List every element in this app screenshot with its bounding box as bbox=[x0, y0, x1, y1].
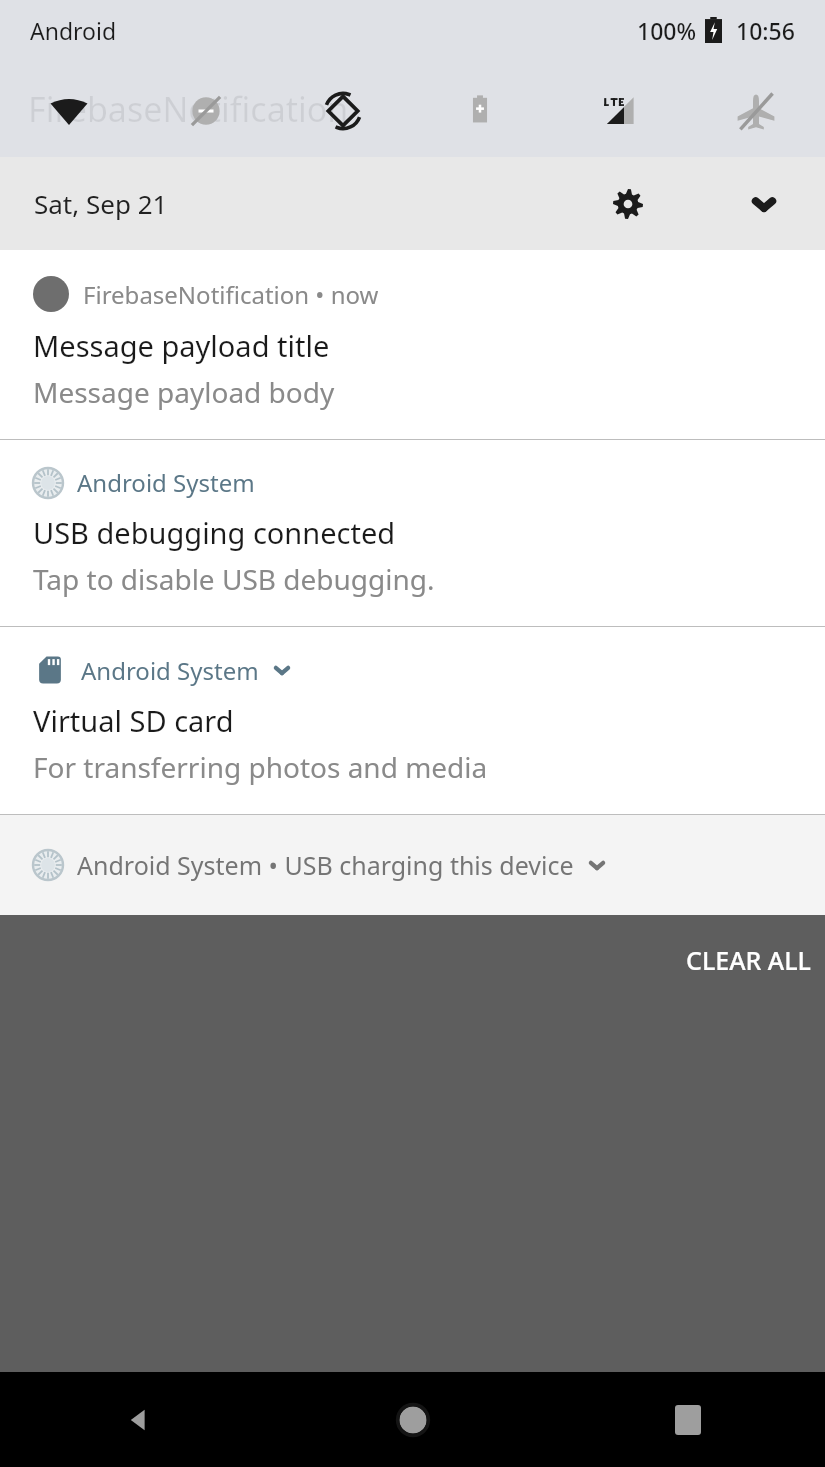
staticText: 10:56 bbox=[736, 15, 795, 46]
button[interactable]: Quick setting bbox=[411, 89, 549, 133]
button[interactable]: Recents bbox=[550, 1372, 825, 1467]
button[interactable]: CLEAR ALL bbox=[672, 933, 825, 987]
staticText: Android System • USB charging this devic… bbox=[77, 848, 574, 882]
staticText: Message payload title bbox=[33, 326, 330, 365]
staticText: Sat, Sep 21 bbox=[34, 186, 168, 221]
staticText: 100% bbox=[637, 15, 697, 46]
staticText: Android bbox=[30, 15, 117, 46]
staticText: USB debugging connected bbox=[33, 513, 396, 552]
button[interactable]: Quick setting bbox=[274, 89, 411, 133]
staticText: For transferring photos and media bbox=[33, 748, 488, 786]
staticText: Virtual SD card bbox=[33, 701, 234, 740]
button[interactable]: Quick setting bbox=[549, 88, 687, 134]
button[interactable]: Android System bbox=[0, 627, 825, 814]
button[interactable]: Quick setting bbox=[687, 88, 825, 134]
staticText: FirebaseNotification bbox=[28, 86, 349, 132]
button[interactable]: Home bbox=[275, 1372, 550, 1467]
staticText: FirebaseNotification • now bbox=[83, 278, 379, 311]
staticText: Message payload body bbox=[33, 373, 335, 411]
button[interactable]: Collapse bbox=[737, 177, 791, 231]
button[interactable]: Quick setting bbox=[137, 89, 274, 133]
button[interactable]: Quick setting bbox=[0, 89, 137, 133]
button[interactable]: Android System • USB charging this devic… bbox=[0, 815, 825, 915]
staticText: Android System bbox=[77, 466, 255, 499]
button[interactable]: FirebaseNotification • now bbox=[0, 250, 825, 439]
staticText: Tap to disable USB debugging. bbox=[33, 560, 435, 598]
staticText: CLEAR ALL bbox=[686, 943, 811, 977]
staticText: Android System bbox=[81, 654, 259, 687]
button[interactable]: Back bbox=[0, 1372, 275, 1467]
button[interactable]: Android System bbox=[0, 440, 825, 626]
button[interactable]: Settings bbox=[601, 177, 655, 231]
